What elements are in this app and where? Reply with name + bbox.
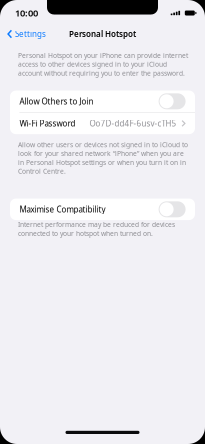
staticText: 10:00 [15, 7, 38, 19]
staticText: Allow other users or devices not signed … [18, 140, 188, 176]
button[interactable]: Allow Others to Join [10, 91, 195, 112]
button[interactable]: Maximise Compatibility [10, 199, 195, 220]
button[interactable]: Wi-Fi Password [10, 113, 195, 134]
staticText: Wi-Fi Password [19, 118, 75, 129]
staticText: Allow Others to Join [19, 96, 93, 107]
button[interactable]: Settings [0, 26, 52, 42]
staticText: Settings [15, 29, 46, 39]
staticText: Maximise Compatibility [19, 204, 105, 215]
staticText: Internet performance may be reduced for … [18, 220, 175, 238]
staticText: Personal Hotspot [69, 29, 136, 39]
staticText: Personal Hotspot on your iPhone can prov… [18, 51, 188, 78]
staticText: Oo7D-dd4F-6usv-cTH5 [89, 118, 176, 129]
